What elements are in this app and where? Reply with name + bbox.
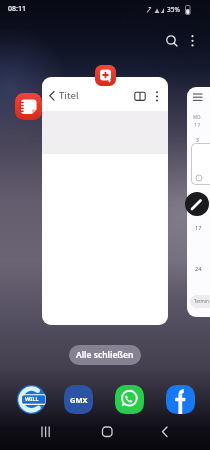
staticText: GMX: [70, 395, 88, 405]
button[interactable]: [115, 385, 144, 414]
button[interactable]: [155, 422, 175, 442]
staticText: MO.: [193, 114, 202, 120]
staticText: 3: [196, 137, 199, 144]
button[interactable]: WILL: [17, 385, 46, 414]
button[interactable]: [97, 422, 117, 442]
button[interactable]: [162, 31, 182, 51]
button[interactable]: GMX: [64, 385, 93, 414]
staticText: Alle schließen: [76, 349, 134, 361]
staticText: Titel: [59, 89, 79, 102]
staticText: 24: [195, 265, 202, 272]
button[interactable]: Titel: [42, 77, 168, 325]
staticText: 08:11: [8, 4, 26, 14]
button[interactable]: [95, 65, 116, 86]
staticText: Termin: [194, 298, 209, 304]
button[interactable]: MO.: [187, 87, 210, 317]
button[interactable]: [186, 31, 199, 51]
staticText: 17: [195, 224, 202, 231]
button[interactable]: [36, 422, 56, 442]
button[interactable]: Alle schließen: [69, 345, 141, 365]
staticText: 35%: [167, 5, 180, 14]
staticText: WILL: [25, 395, 39, 402]
button[interactable]: [166, 385, 195, 414]
button[interactable]: [15, 93, 42, 120]
staticText: 17: [194, 121, 201, 128]
